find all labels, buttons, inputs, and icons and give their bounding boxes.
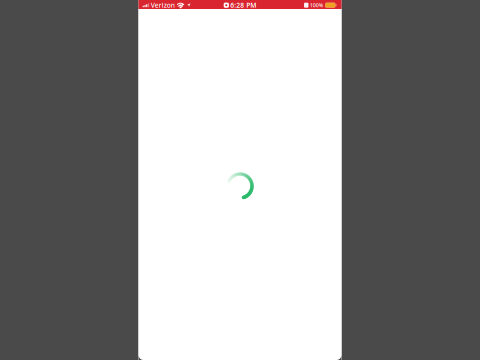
staticText: 100% <box>310 2 324 9</box>
button[interactable]: Stop screen recording <box>224 1 256 10</box>
staticText: Verizon <box>151 1 175 10</box>
staticText: 6:28 PM <box>230 1 256 10</box>
